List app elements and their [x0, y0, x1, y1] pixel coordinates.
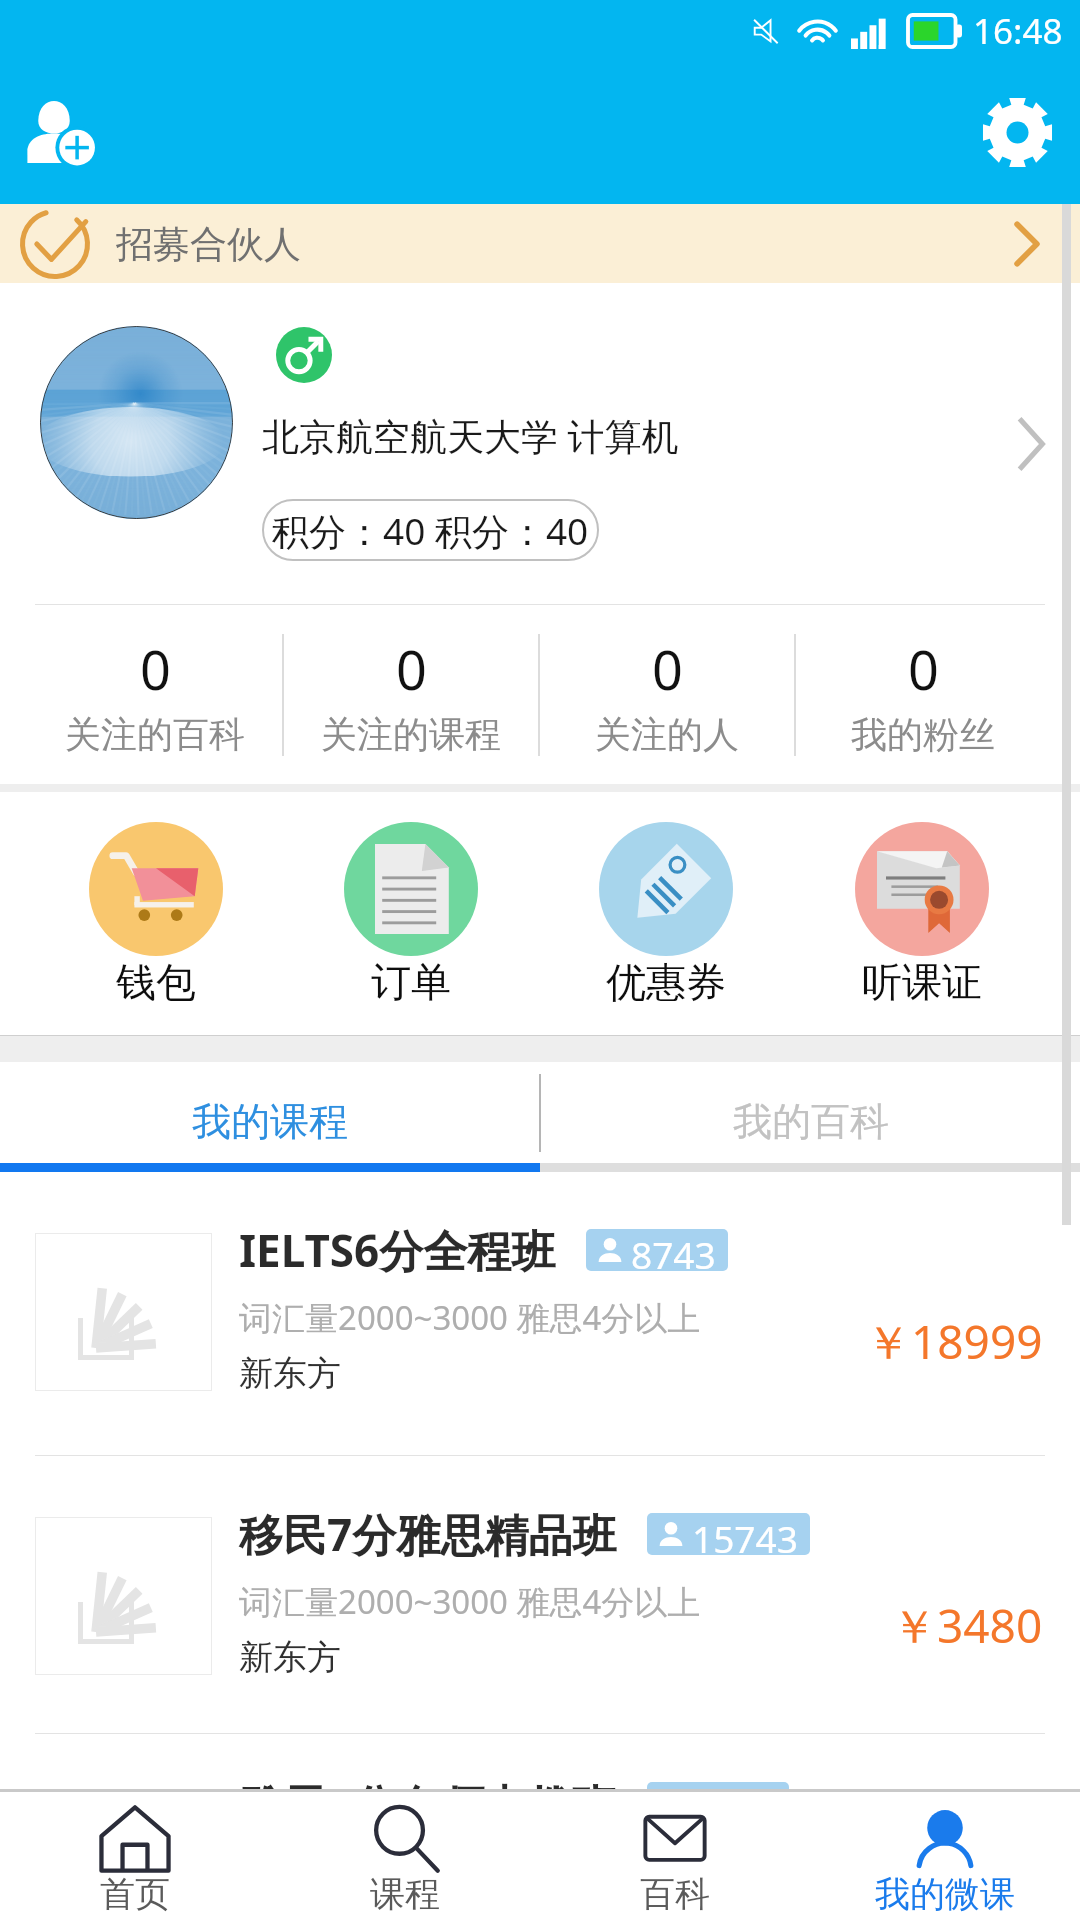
- staticText: 词汇量2000~3000 雅思4分以上: [239, 1579, 701, 1624]
- button[interactable]: 北京航空航天大学 计算机: [0, 283, 1080, 604]
- staticText: 订单: [371, 957, 451, 1007]
- button[interactable]: 我的百科: [541, 1062, 1080, 1163]
- button[interactable]: 我的微课: [810, 1792, 1080, 1920]
- staticText: ￥18999: [865, 1310, 1043, 1373]
- staticText: 8743: [631, 1229, 716, 1271]
- button[interactable]: 优惠券: [538, 792, 794, 1035]
- button[interactable]: 我的课程: [0, 1062, 539, 1163]
- staticText: 15743: [692, 1513, 798, 1555]
- staticText: 词汇量2000~3000 雅思4分以上: [239, 1857, 701, 1902]
- button[interactable]: 招募合伙人: [0, 204, 1080, 283]
- staticText: 移民7分雅思精品班: [239, 1504, 617, 1564]
- staticText: 我的微课: [875, 1872, 1015, 1916]
- staticText: ￥3480: [891, 1594, 1043, 1657]
- staticText: 我的课程: [192, 1097, 348, 1146]
- button[interactable]: 雅思6分名师点拨班: [0, 1734, 1080, 1789]
- staticText: 北京航空航天大学 计算机: [262, 410, 679, 461]
- staticText: 课程: [370, 1872, 440, 1916]
- staticText: 0: [396, 632, 427, 706]
- staticText: 关注的课程: [321, 712, 501, 757]
- staticText: 词汇量2000~3000 雅思4分以上: [239, 1295, 701, 1340]
- staticText: 0: [652, 632, 683, 706]
- button[interactable]: 0: [28, 632, 282, 757]
- button[interactable]: 0: [284, 632, 538, 757]
- staticText: 优惠券: [606, 957, 726, 1007]
- button[interactable]: 钱包: [28, 792, 283, 1035]
- staticText: 我的百科: [733, 1097, 889, 1146]
- staticText: 首页: [100, 1872, 170, 1916]
- staticText: 积分：40 积分：40: [272, 505, 589, 556]
- staticText: 我的粉丝: [851, 712, 995, 757]
- staticText: 9021: [692, 1782, 777, 1824]
- button[interactable]: Add friend: [9, 79, 113, 183]
- button[interactable]: 0: [796, 632, 1050, 757]
- button[interactable]: 首页: [0, 1792, 270, 1920]
- staticText: IELTS6分全程班: [239, 1220, 556, 1280]
- button[interactable]: 移民7分雅思精品班: [0, 1456, 1080, 1733]
- staticText: ￥2980: [891, 1872, 1043, 1920]
- staticText: 0: [908, 632, 939, 706]
- staticText: 关注的人: [595, 712, 739, 757]
- staticText: 钱包: [116, 957, 196, 1007]
- staticText: 招募合伙人: [116, 221, 301, 268]
- staticText: 听课证: [862, 957, 982, 1007]
- button[interactable]: 听课证: [794, 792, 1050, 1035]
- staticText: 新东方: [239, 1636, 341, 1679]
- button[interactable]: 0: [540, 632, 794, 757]
- staticText: 0: [140, 632, 171, 706]
- button[interactable]: 订单: [283, 792, 538, 1035]
- staticText: 新东方: [239, 1352, 341, 1395]
- button[interactable]: 课程: [270, 1792, 540, 1920]
- button[interactable]: IELTS6分全程班: [0, 1172, 1080, 1455]
- staticText: 百科: [640, 1872, 710, 1916]
- staticText: 雅思6分名师点拨班: [239, 1775, 617, 1830]
- button[interactable]: Settings: [965, 79, 1069, 183]
- staticText: 关注的百科: [65, 712, 245, 757]
- button[interactable]: 百科: [540, 1792, 810, 1920]
- staticText: 16:48: [973, 7, 1063, 55]
